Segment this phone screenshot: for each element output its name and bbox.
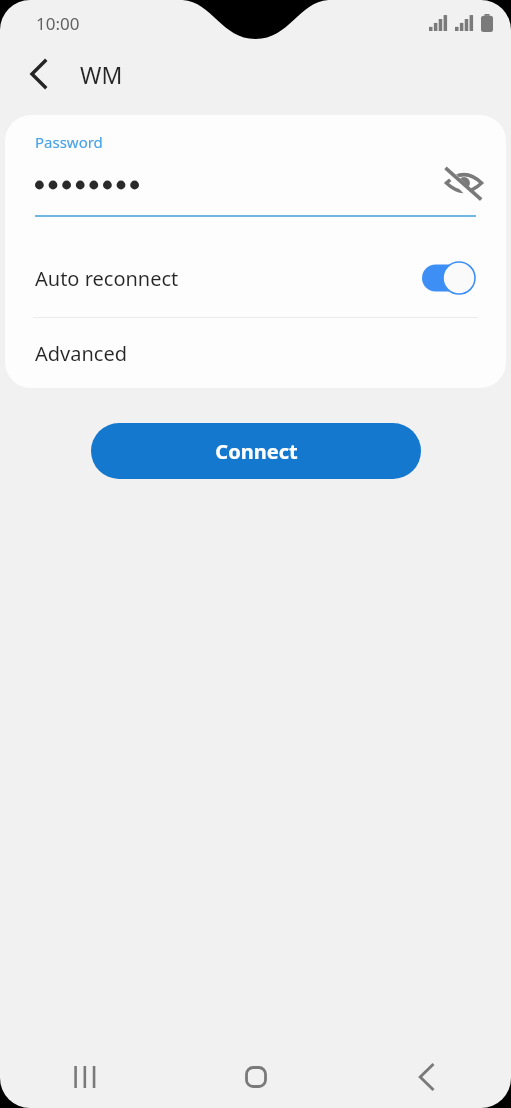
button[interactable]: Connect [91,423,421,479]
button[interactable]: Auto reconnect toggle [422,261,476,295]
button[interactable]: Password [5,115,506,239]
button[interactable]: Recent apps [57,1049,113,1105]
button[interactable]: Advanced [5,318,506,388]
staticText: Advanced [35,340,127,367]
button[interactable]: Back [18,53,60,95]
staticText: Connect [215,438,298,465]
staticText: 10:00 [36,12,80,35]
staticText: Password [35,132,103,152]
staticText: Auto reconnect [35,265,179,292]
button[interactable]: Home [228,1049,284,1105]
staticText: WM [80,59,123,90]
button[interactable]: Show password [440,159,488,207]
button[interactable]: Back [398,1049,454,1105]
button[interactable]: Auto reconnect [5,239,506,317]
